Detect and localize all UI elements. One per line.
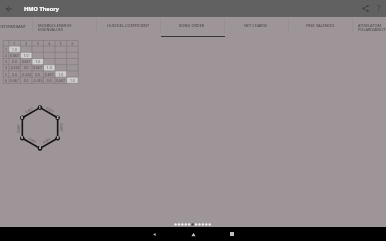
button[interactable]: Home — [186, 227, 200, 241]
staticText: HUECKEL-COEFFICIENT — [107, 23, 150, 28]
button[interactable]: MOEBIUS-ENERGY-EIGENVALUES — [32, 17, 96, 37]
staticText: NET CHARGE — [244, 23, 268, 28]
staticText: ATOM-ATOM-POLARIZABILITY — [358, 23, 386, 32]
button[interactable]: Help — [373, 3, 384, 14]
button[interactable]: Back — [4, 4, 14, 14]
staticText: FREE VALENCES — [306, 23, 335, 28]
button[interactable]: Recents — [225, 227, 239, 241]
button[interactable]: NET CHARGE — [224, 17, 288, 37]
button[interactable]: BOND ORDER — [160, 17, 224, 37]
staticText: SECULAR-DETERMINANT — [0, 24, 26, 29]
button[interactable]: FREE VALENCES — [288, 17, 352, 37]
button[interactable]: HUECKEL-COEFFICIENT — [96, 17, 160, 37]
button[interactable]: ATOM-ATOM-POLARIZABILITY — [352, 17, 386, 37]
staticText: HMO Theory — [24, 5, 59, 13]
staticText: ? — [377, 3, 381, 14]
staticText: BOND ORDER — [179, 23, 205, 28]
button[interactable]: Share — [360, 3, 371, 14]
staticText: MOEBIUS-ENERGY-EIGENVALUES — [38, 23, 90, 32]
button[interactable]: Back — [147, 227, 161, 241]
